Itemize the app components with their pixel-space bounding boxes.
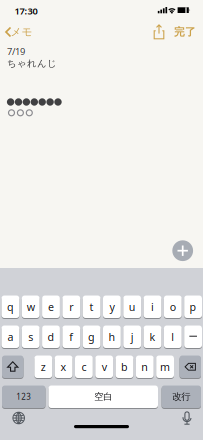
button[interactable]: c xyxy=(75,355,93,378)
staticText: ちゃれんじ xyxy=(7,58,57,69)
staticText: s xyxy=(28,330,33,344)
button[interactable]: j xyxy=(123,325,141,348)
staticText: l xyxy=(171,330,174,344)
button[interactable]: y xyxy=(103,295,121,318)
button[interactable]: x xyxy=(55,355,72,378)
button[interactable]: b xyxy=(116,355,133,378)
button[interactable]: 空白 xyxy=(48,385,158,408)
staticText: t xyxy=(90,300,94,314)
button[interactable]: 音声入力 xyxy=(181,411,193,428)
staticText: g xyxy=(88,330,95,344)
button[interactable]: q xyxy=(1,295,19,318)
staticText: w xyxy=(27,300,35,314)
staticText: c xyxy=(81,360,86,374)
staticText: o xyxy=(170,300,176,314)
button[interactable]: 次のキーボード xyxy=(12,411,26,425)
staticText: d xyxy=(47,330,54,344)
staticText: a xyxy=(7,330,13,344)
staticText: 123 xyxy=(16,391,31,402)
button[interactable]: ー xyxy=(184,325,202,348)
button[interactable]: z xyxy=(34,355,52,378)
button[interactable]: 改行 xyxy=(161,385,201,408)
button[interactable]: シフト xyxy=(2,355,23,378)
button[interactable]: v xyxy=(95,355,113,378)
button[interactable]: 共有 xyxy=(151,23,167,41)
button[interactable]: t xyxy=(83,295,100,318)
staticText: f xyxy=(69,330,73,344)
staticText: 空白 xyxy=(94,391,112,402)
button[interactable]: メモ xyxy=(1,20,33,44)
staticText: e xyxy=(48,300,54,314)
staticText: ー xyxy=(189,331,198,342)
button[interactable]: u xyxy=(123,295,141,318)
button[interactable]: h xyxy=(103,325,121,348)
staticText: 7/19 xyxy=(7,45,25,58)
button[interactable]: 123 xyxy=(2,385,45,408)
button[interactable]: 完了 xyxy=(174,25,196,38)
staticText: i xyxy=(151,300,154,314)
staticText: x xyxy=(61,360,67,374)
button[interactable]: i xyxy=(144,295,161,318)
staticText: n xyxy=(141,360,148,374)
button[interactable]: l xyxy=(164,325,182,348)
staticText: p xyxy=(190,300,197,314)
staticText: 完了 xyxy=(174,25,196,38)
staticText: k xyxy=(149,330,155,344)
button[interactable]: k xyxy=(144,325,161,348)
staticText: z xyxy=(41,360,46,374)
button[interactable]: a xyxy=(1,325,19,348)
button[interactable]: s xyxy=(22,325,40,348)
button[interactable]: p xyxy=(184,295,202,318)
staticText: h xyxy=(108,330,115,344)
button[interactable]: 削除 xyxy=(179,355,201,378)
button[interactable]: 新規メモ xyxy=(172,240,193,261)
button[interactable]: e xyxy=(42,295,60,318)
button[interactable]: m xyxy=(156,355,174,378)
button[interactable]: w xyxy=(22,295,40,318)
button[interactable]: o xyxy=(164,295,182,318)
staticText: 17:30 xyxy=(14,5,37,17)
staticText: j xyxy=(131,330,134,344)
button[interactable]: f xyxy=(62,325,80,348)
button[interactable]: n xyxy=(136,355,154,378)
staticText: q xyxy=(7,300,14,314)
staticText: メモ xyxy=(10,25,32,38)
button[interactable]: g xyxy=(83,325,100,348)
button[interactable]: d xyxy=(42,325,60,348)
button[interactable]: r xyxy=(62,295,80,318)
staticText: v xyxy=(102,360,107,374)
staticText: b xyxy=(121,360,128,374)
staticText: r xyxy=(69,300,73,314)
staticText: y xyxy=(109,300,114,314)
staticText: m xyxy=(160,360,170,374)
staticText: u xyxy=(129,300,136,314)
staticText: 改行 xyxy=(172,391,190,402)
